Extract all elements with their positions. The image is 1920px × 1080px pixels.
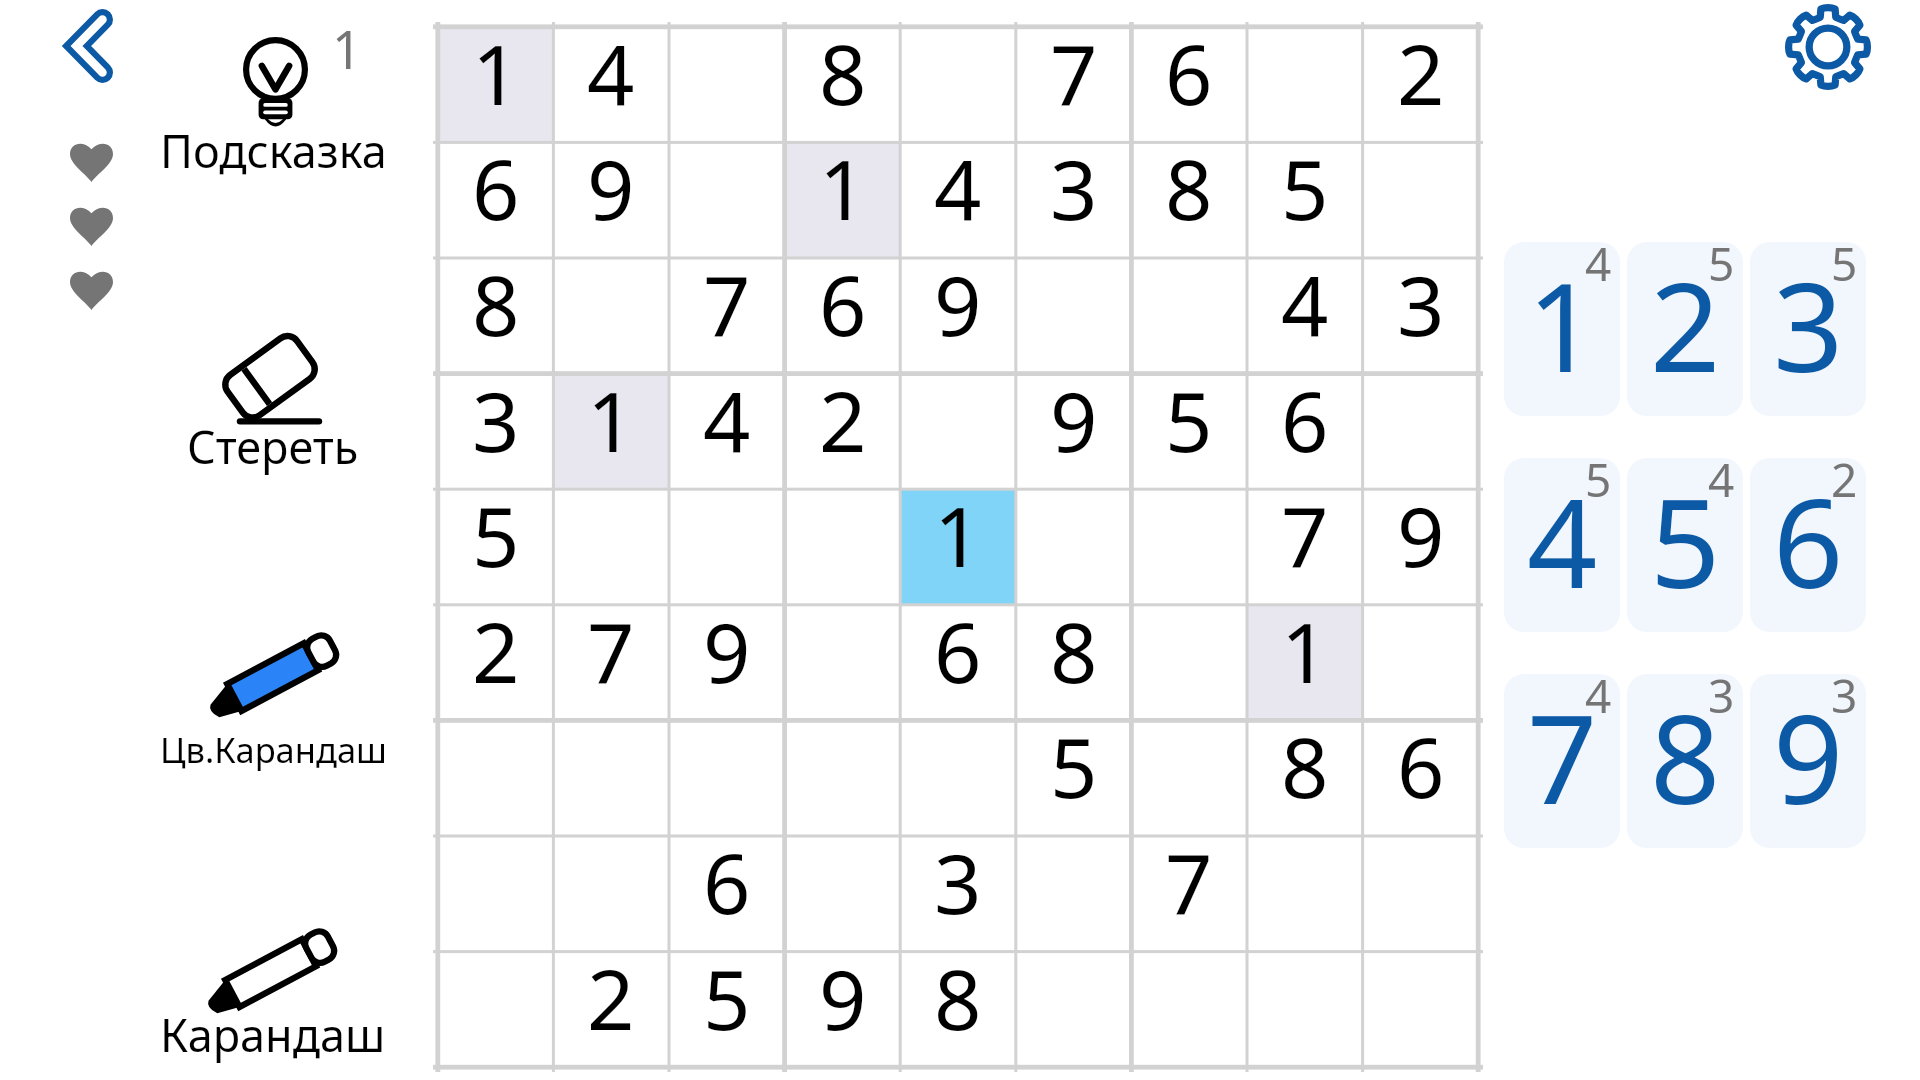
button[interactable]: Empty cell 4 6 <box>1131 489 1247 605</box>
button[interactable]: Empty cell 4 3 <box>785 489 901 605</box>
button[interactable]: Cell 2 2 value 7 <box>669 258 785 374</box>
button[interactable]: Cell 2 0 value 8 <box>438 258 554 374</box>
button[interactable]: Empty cell 6 2 <box>669 720 785 836</box>
button[interactable]: Cell 2 8 value 3 <box>1363 258 1479 374</box>
staticText: 9 <box>934 247 982 360</box>
button[interactable]: Cell 0 8 value 2 <box>1363 27 1479 143</box>
button[interactable]: Cell 8 1 value 2 <box>553 952 669 1068</box>
button[interactable]: Empty cell 6 3 <box>785 720 901 836</box>
button[interactable]: Цв.Карандаш <box>123 625 423 773</box>
button[interactable]: Cell 6 8 value 6 <box>1363 720 1479 836</box>
button[interactable]: Cell 8 2 value 5 <box>669 952 785 1068</box>
button[interactable]: Cell 1 4 value 4 <box>900 142 1016 258</box>
button[interactable]: 5 <box>1627 458 1743 632</box>
button[interactable]: Cell 0 3 value 8 <box>785 27 901 143</box>
button[interactable]: Cell 6 5 value 5 <box>1016 720 1132 836</box>
button[interactable]: Empty cell 7 8 <box>1363 836 1479 952</box>
button[interactable]: Empty cell 7 0 <box>438 836 554 952</box>
button[interactable]: Cell 3 5 value 9 <box>1016 374 1132 490</box>
button[interactable]: Empty cell 3 4 <box>900 374 1016 490</box>
button[interactable]: Cell 5 7 value 1 <box>1247 605 1363 721</box>
button[interactable]: Cell 5 5 value 8 <box>1016 605 1132 721</box>
button[interactable]: Empty cell 6 4 <box>900 720 1016 836</box>
button[interactable]: Empty cell 2 5 <box>1016 258 1132 374</box>
button[interactable]: Cell 1 1 value 9 <box>553 142 669 258</box>
button[interactable]: Empty cell 7 5 <box>1016 836 1132 952</box>
button[interactable]: Cell 1 3 value 1 <box>785 142 901 258</box>
button[interactable]: 9 <box>1750 674 1866 848</box>
button[interactable]: Cell 4 7 value 7 <box>1247 489 1363 605</box>
button[interactable]: Empty cell 1 2 <box>669 142 785 258</box>
staticText: 6 <box>472 131 520 244</box>
button[interactable]: Cell 1 0 value 6 <box>438 142 554 258</box>
button[interactable]: Empty cell 6 0 <box>438 720 554 836</box>
button[interactable]: Cell 0 1 value 4 <box>553 27 669 143</box>
button[interactable]: 1 <box>1504 242 1620 416</box>
button[interactable]: Empty cell 7 3 <box>785 836 901 952</box>
button[interactable]: Cell 0 5 value 7 <box>1016 27 1132 143</box>
button[interactable]: Cell 2 3 value 6 <box>785 258 901 374</box>
button[interactable]: Empty cell 4 1 <box>553 489 669 605</box>
button[interactable]: Empty cell 8 7 <box>1247 952 1363 1068</box>
button[interactable]: Cell 5 1 value 7 <box>553 605 669 721</box>
button[interactable]: Empty cell 7 1 <box>553 836 669 952</box>
button[interactable]: Cell 3 1 value 1 <box>553 374 669 490</box>
button[interactable]: 7 <box>1504 674 1620 848</box>
button[interactable]: 6 <box>1750 458 1866 632</box>
button[interactable]: 8 <box>1627 674 1743 848</box>
button[interactable]: Back <box>66 9 113 83</box>
button[interactable]: 1 <box>123 24 423 184</box>
button[interactable]: Cell 4 8 value 9 <box>1363 489 1479 605</box>
button[interactable]: Empty cell 2 1 <box>553 258 669 374</box>
button[interactable]: Cell 4 0 value 5 <box>438 489 554 605</box>
button[interactable]: Empty cell 8 5 <box>1016 952 1132 1068</box>
button[interactable]: Empty cell 5 6 <box>1131 605 1247 721</box>
button[interactable]: Cell 7 4 value 3 <box>900 836 1016 952</box>
button[interactable]: Карандаш <box>123 917 423 1065</box>
button[interactable]: Cell 2 7 value 4 <box>1247 258 1363 374</box>
button[interactable]: Empty cell 0 2 <box>669 27 785 143</box>
button[interactable]: Empty cell 5 3 <box>785 605 901 721</box>
button[interactable]: Cell 0 6 value 6 <box>1131 27 1247 143</box>
button[interactable]: Cell 5 4 value 6 <box>900 605 1016 721</box>
button[interactable]: Cell 3 0 value 3 <box>438 374 554 490</box>
button[interactable]: Empty cell 3 8 <box>1363 374 1479 490</box>
button[interactable]: Cell 1 5 value 3 <box>1016 142 1132 258</box>
button[interactable]: Cell 0 0 value 1 <box>438 27 554 143</box>
button[interactable]: Empty cell 0 4 <box>900 27 1016 143</box>
staticText: 6 <box>1281 363 1329 476</box>
button[interactable]: Cell 7 2 value 6 <box>669 836 785 952</box>
button[interactable]: Empty cell 8 6 <box>1131 952 1247 1068</box>
button[interactable]: Empty cell 1 8 <box>1363 142 1479 258</box>
button[interactable]: Cell 3 2 value 4 <box>669 374 785 490</box>
staticText: 1 <box>587 363 635 476</box>
button[interactable]: 2 <box>1627 242 1743 416</box>
button[interactable]: Empty cell 8 0 <box>438 952 554 1068</box>
button[interactable]: Empty cell 4 5 <box>1016 489 1132 605</box>
button[interactable]: Empty cell 2 6 <box>1131 258 1247 374</box>
button[interactable]: Cell 7 6 value 7 <box>1131 836 1247 952</box>
button[interactable]: Стереть <box>123 332 423 477</box>
button[interactable]: Empty cell 5 8 <box>1363 605 1479 721</box>
button[interactable]: Empty cell 0 7 <box>1247 27 1363 143</box>
button[interactable]: Empty cell 7 7 <box>1247 836 1363 952</box>
button[interactable]: Cell 5 2 value 9 <box>669 605 785 721</box>
button[interactable]: 4 <box>1504 458 1620 632</box>
button[interactable]: Empty cell 6 1 <box>553 720 669 836</box>
button[interactable]: Cell 3 3 value 2 <box>785 374 901 490</box>
button[interactable]: Cell 6 7 value 8 <box>1247 720 1363 836</box>
button[interactable]: Cell 3 6 value 5 <box>1131 374 1247 490</box>
button[interactable]: Empty cell 6 6 <box>1131 720 1247 836</box>
button[interactable]: Empty cell 4 2 <box>669 489 785 605</box>
button[interactable]: Cell 5 0 value 2 <box>438 605 554 721</box>
button[interactable]: Cell 8 3 value 9 <box>785 952 901 1068</box>
button[interactable]: Cell 2 4 value 9 <box>900 258 1016 374</box>
button[interactable]: Cell 3 7 value 6 <box>1247 374 1363 490</box>
button[interactable]: Cell 1 6 value 8 <box>1131 142 1247 258</box>
button[interactable]: Empty cell 8 8 <box>1363 952 1479 1068</box>
button[interactable]: 3 <box>1750 242 1866 416</box>
button[interactable]: Cell 1 7 value 5 <box>1247 142 1363 258</box>
button[interactable]: Settings <box>1782 1 1874 93</box>
button[interactable]: Cell 8 4 value 8 <box>900 952 1016 1068</box>
button[interactable]: Cell 4 4 value 1 <box>900 489 1016 605</box>
